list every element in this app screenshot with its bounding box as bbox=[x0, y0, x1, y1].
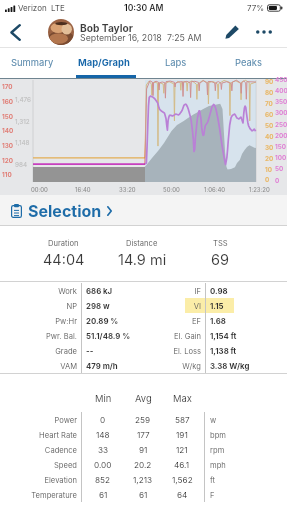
button[interactable]: Peaks bbox=[212, 48, 284, 79]
staticText: 10:30 AM bbox=[124, 3, 164, 13]
staticText: Duration bbox=[48, 239, 79, 248]
staticText: 50 bbox=[265, 122, 274, 130]
staticText: 300 bbox=[275, 109, 287, 117]
staticText: Max bbox=[173, 393, 192, 404]
staticText: -- bbox=[86, 346, 94, 355]
staticText: 170 bbox=[2, 83, 13, 91]
staticText: 587 bbox=[175, 415, 190, 425]
button[interactable]: Laps bbox=[140, 48, 212, 79]
staticText: 160 bbox=[2, 98, 14, 106]
staticText: 1,138 ft bbox=[210, 346, 237, 355]
staticText: Bob Taylor bbox=[80, 22, 133, 34]
staticText: 0 bbox=[275, 177, 280, 185]
staticText: Summary bbox=[11, 57, 54, 68]
staticText: 1,312 bbox=[15, 118, 30, 126]
staticText: El. Gain bbox=[124, 332, 201, 341]
staticText: 1.68 bbox=[210, 316, 226, 325]
staticText: 80 bbox=[265, 89, 274, 97]
staticText: 984 bbox=[15, 161, 28, 169]
staticText: Pwr. Bal. bbox=[0, 332, 77, 341]
button[interactable]: Athlete photo bbox=[48, 19, 74, 45]
staticText: Laps bbox=[165, 57, 187, 68]
staticText: 70 bbox=[265, 100, 273, 108]
staticText: 259 bbox=[135, 415, 151, 425]
staticText: 0 bbox=[100, 415, 106, 425]
staticText: 14.9 mi bbox=[118, 251, 167, 269]
staticText: 250 bbox=[275, 121, 287, 129]
staticText: NP bbox=[0, 302, 77, 311]
staticText: 60 bbox=[265, 111, 274, 119]
staticText: 90 bbox=[265, 78, 274, 86]
staticText: Avg bbox=[135, 393, 152, 404]
staticText: 46.1 bbox=[174, 460, 190, 470]
staticText: Power bbox=[0, 416, 77, 425]
staticText: Elevation bbox=[0, 476, 77, 485]
staticText: IF bbox=[124, 287, 201, 296]
staticText: 16:40 bbox=[75, 186, 91, 193]
staticText: LTE bbox=[51, 3, 65, 13]
staticText: 1,213 bbox=[133, 475, 153, 485]
staticText: bpm bbox=[210, 431, 226, 440]
staticText: 10 bbox=[265, 166, 272, 174]
staticText: 400 bbox=[275, 87, 287, 95]
staticText: 0 bbox=[265, 176, 270, 184]
staticText: EF bbox=[124, 317, 201, 326]
staticText: 1,148 bbox=[15, 139, 30, 147]
staticText: ft bbox=[210, 476, 216, 485]
staticText: 1,154 ft bbox=[210, 331, 237, 340]
staticText: 100 bbox=[275, 154, 287, 162]
staticText: 20.89 % bbox=[86, 316, 119, 325]
staticText: 110 bbox=[2, 171, 12, 179]
staticText: w bbox=[210, 416, 217, 425]
button[interactable]: Selection bbox=[0, 195, 287, 226]
staticText: 61 bbox=[139, 490, 148, 500]
button[interactable]: More options bbox=[253, 21, 275, 43]
staticText: 1:23:20 bbox=[249, 186, 270, 193]
staticText: 69 bbox=[211, 251, 229, 269]
staticText: Cadence bbox=[0, 446, 77, 455]
staticText: Grade bbox=[0, 347, 77, 356]
staticText: Speed bbox=[0, 461, 77, 470]
staticText: 44:04 bbox=[43, 251, 85, 269]
staticText: Distance bbox=[126, 239, 158, 248]
staticText: 191 bbox=[176, 430, 188, 440]
staticText: 686 kJ bbox=[86, 286, 113, 295]
staticText: 1.15 bbox=[210, 301, 224, 310]
staticText: 77% bbox=[247, 3, 265, 13]
staticText: 0.98 bbox=[210, 286, 228, 295]
staticText: Work bbox=[0, 287, 77, 296]
staticText: TSS bbox=[213, 239, 228, 248]
staticText: September 16, 2018 bbox=[80, 32, 162, 43]
staticText: mph bbox=[210, 461, 226, 470]
staticText: 479 m/h bbox=[86, 361, 118, 370]
staticText: 30 bbox=[265, 144, 274, 152]
staticText: Min bbox=[95, 393, 112, 404]
staticText: 91 bbox=[139, 445, 148, 455]
staticText: 148 bbox=[96, 430, 110, 440]
staticText: W/kg bbox=[124, 362, 201, 371]
button[interactable]: Back bbox=[0, 16, 30, 48]
staticText: 50 bbox=[275, 165, 284, 173]
staticText: 33 bbox=[98, 445, 109, 455]
staticText: 350 bbox=[275, 98, 287, 106]
staticText: 64 bbox=[177, 490, 188, 500]
staticText: 00:00 bbox=[31, 186, 48, 193]
staticText: 51.1/48.9 % bbox=[86, 331, 131, 340]
staticText: 20 bbox=[265, 155, 274, 163]
staticText: 150 bbox=[2, 113, 13, 121]
staticText: 200 bbox=[275, 132, 287, 140]
staticText: 0.00 bbox=[94, 460, 112, 470]
staticText: F bbox=[210, 491, 215, 500]
staticText: 20.2 bbox=[134, 460, 152, 470]
button[interactable]: Map/Graph bbox=[68, 48, 140, 79]
staticText: VAM bbox=[0, 362, 77, 371]
button[interactable]: Summary bbox=[0, 48, 68, 79]
staticText: 1:06:40 bbox=[204, 186, 226, 193]
staticText: 150 bbox=[275, 143, 286, 151]
staticText: 50:00 bbox=[163, 186, 180, 193]
button[interactable]: Edit bbox=[221, 21, 243, 43]
staticText: VI bbox=[124, 302, 201, 311]
staticText: 140 bbox=[2, 127, 14, 135]
staticText: 298 w bbox=[86, 301, 110, 310]
staticText: 1,562 bbox=[172, 475, 193, 485]
